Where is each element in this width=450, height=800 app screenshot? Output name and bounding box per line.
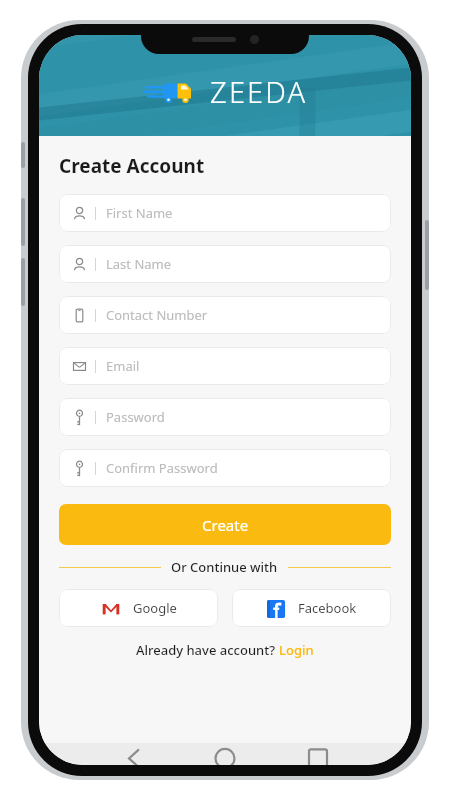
staticText: Email <box>106 357 140 375</box>
staticText: Create <box>202 515 249 535</box>
staticText: Contact Number <box>106 306 208 324</box>
button[interactable]: Confirm Password <box>59 449 391 487</box>
staticText: Create Account <box>59 153 205 179</box>
staticText: Google <box>133 599 177 617</box>
button[interactable]: Google <box>59 589 218 627</box>
button[interactable]: Create <box>59 504 391 545</box>
staticText: Facebook <box>298 599 357 617</box>
staticText: Password <box>106 408 165 426</box>
staticText: Last Name <box>106 255 172 273</box>
staticText: Confirm Password <box>106 459 218 477</box>
button[interactable]: Contact Number <box>59 296 391 334</box>
button[interactable]: Last Name <box>59 245 391 283</box>
button[interactable]: First Name <box>59 194 391 232</box>
button[interactable]: Password <box>59 398 391 436</box>
staticText: ZEEDA <box>210 72 308 111</box>
button[interactable]: Already have account? <box>136 641 314 659</box>
staticText: Login <box>279 641 314 659</box>
button[interactable]: Facebook <box>232 589 391 627</box>
staticText: First Name <box>106 204 173 222</box>
button[interactable]: Email <box>59 347 391 385</box>
staticText: Or Continue with <box>171 558 278 576</box>
staticText: Already have account? <box>136 641 279 659</box>
